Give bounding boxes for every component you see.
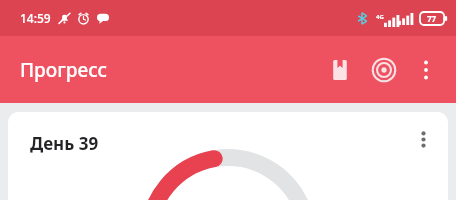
button[interactable]: More options (406, 50, 446, 90)
button[interactable]: Card options (404, 120, 442, 158)
button[interactable]: Goals (362, 48, 406, 92)
staticText: День 39 (30, 132, 99, 155)
staticText: 4G (376, 13, 384, 21)
staticText: Прогресс (20, 57, 108, 83)
staticText: 14:59 (20, 10, 51, 26)
button[interactable]: Journal (318, 48, 362, 92)
button[interactable]: День 39 (8, 112, 448, 200)
staticText: 77 (427, 13, 437, 24)
